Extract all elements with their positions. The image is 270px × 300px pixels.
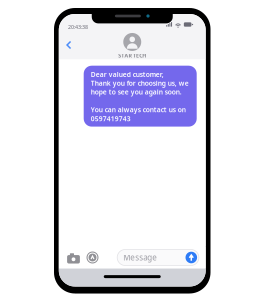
staticText: You can always contact us on (91, 105, 186, 114)
staticText: 20:43:38 (68, 23, 88, 30)
staticText: hope to see you again soon. (91, 88, 182, 96)
button[interactable]: Message (117, 249, 199, 265)
button[interactable]: STAR TECH (110, 31, 154, 59)
button[interactable]: Camera (64, 248, 83, 266)
staticText: Message (123, 252, 157, 263)
staticText: 0597419743 (91, 114, 131, 123)
button[interactable]: Apps (83, 248, 102, 266)
staticText: STAR TECH (118, 52, 146, 59)
staticText: Dear valued customer, (91, 70, 164, 79)
button[interactable]: Back (59, 36, 78, 54)
staticText: Thank you for choosing us, we (91, 79, 189, 88)
